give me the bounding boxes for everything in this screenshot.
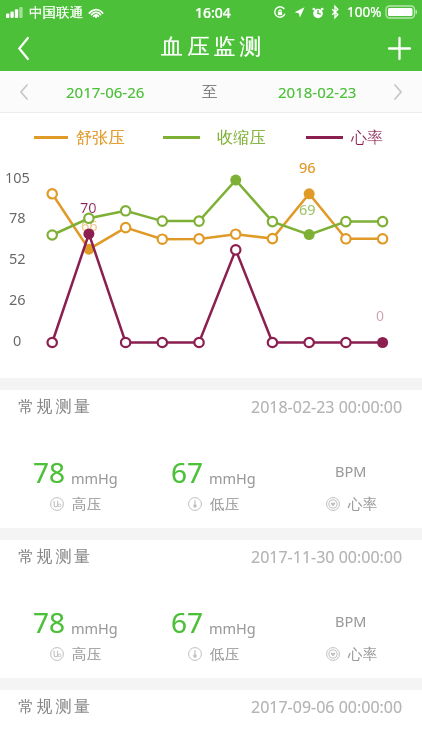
staticText: 中国联通 bbox=[29, 4, 83, 21]
staticText: mmHg bbox=[209, 468, 256, 488]
button[interactable]: 常规测量 bbox=[0, 528, 422, 678]
staticText: 心率 bbox=[348, 495, 377, 513]
staticText: 心率 bbox=[348, 645, 377, 663]
staticText: 0 bbox=[376, 306, 385, 325]
staticText: 血压监测 bbox=[161, 33, 266, 61]
button[interactable]: 78 bbox=[6, 434, 144, 528]
staticText: 高压 bbox=[72, 495, 101, 513]
staticText: 67 bbox=[171, 603, 204, 641]
staticText: mmHg bbox=[209, 618, 256, 638]
staticText: 2018-02-23 bbox=[278, 82, 357, 102]
staticText: 低压 bbox=[210, 645, 239, 663]
staticText: 96 bbox=[299, 157, 316, 177]
button[interactable]: 78 bbox=[6, 584, 144, 678]
staticText: 78 bbox=[33, 453, 66, 491]
button[interactable]: Add bbox=[376, 25, 422, 71]
staticText: 0 bbox=[13, 330, 22, 350]
staticText: 70 bbox=[80, 197, 97, 217]
staticText: 高压 bbox=[72, 645, 101, 663]
button[interactable]: 67 bbox=[144, 434, 282, 528]
staticText: BPM bbox=[335, 461, 367, 481]
button[interactable]: Back bbox=[0, 25, 46, 71]
staticText: 常规测量 bbox=[18, 547, 93, 567]
staticText: 100% bbox=[347, 3, 382, 21]
staticText: 低压 bbox=[210, 495, 239, 513]
staticText: 69 bbox=[299, 199, 316, 219]
staticText: mmHg bbox=[71, 618, 118, 638]
staticText: 105 bbox=[5, 167, 30, 187]
staticText: mmHg bbox=[71, 468, 118, 488]
staticText: 26 bbox=[9, 289, 26, 309]
staticText: 16:04 bbox=[195, 3, 231, 22]
staticText: 心率 bbox=[351, 128, 384, 148]
staticText: 收缩压 bbox=[217, 128, 266, 148]
button[interactable]: 常规测量 bbox=[0, 678, 422, 750]
staticText: 2017-06-26 bbox=[66, 82, 145, 102]
staticText: 78 bbox=[33, 603, 66, 641]
staticText: 2017-11-30 00:00:00 bbox=[251, 546, 403, 568]
button[interactable]: 常规测量 bbox=[0, 378, 422, 528]
staticText: 2018-02-23 00:00:00 bbox=[251, 396, 403, 418]
button[interactable]: Previous bbox=[4, 71, 44, 113]
staticText: BPM bbox=[335, 611, 367, 631]
staticText: 常规测量 bbox=[18, 697, 93, 717]
staticText: 舒张压 bbox=[76, 128, 125, 148]
staticText: 52 bbox=[9, 248, 26, 268]
staticText: 至 bbox=[202, 82, 218, 102]
staticText: 2017-09-06 00:00:00 bbox=[251, 696, 403, 718]
button[interactable]: 67 bbox=[144, 584, 282, 678]
staticText: 67 bbox=[171, 453, 204, 491]
staticText: 常规测量 bbox=[18, 397, 93, 417]
staticText: 66 bbox=[81, 215, 98, 235]
staticText: 78 bbox=[9, 207, 26, 227]
button[interactable]: Next bbox=[378, 71, 418, 113]
button[interactable]: BPM bbox=[282, 584, 420, 678]
button[interactable]: BPM bbox=[282, 434, 420, 528]
